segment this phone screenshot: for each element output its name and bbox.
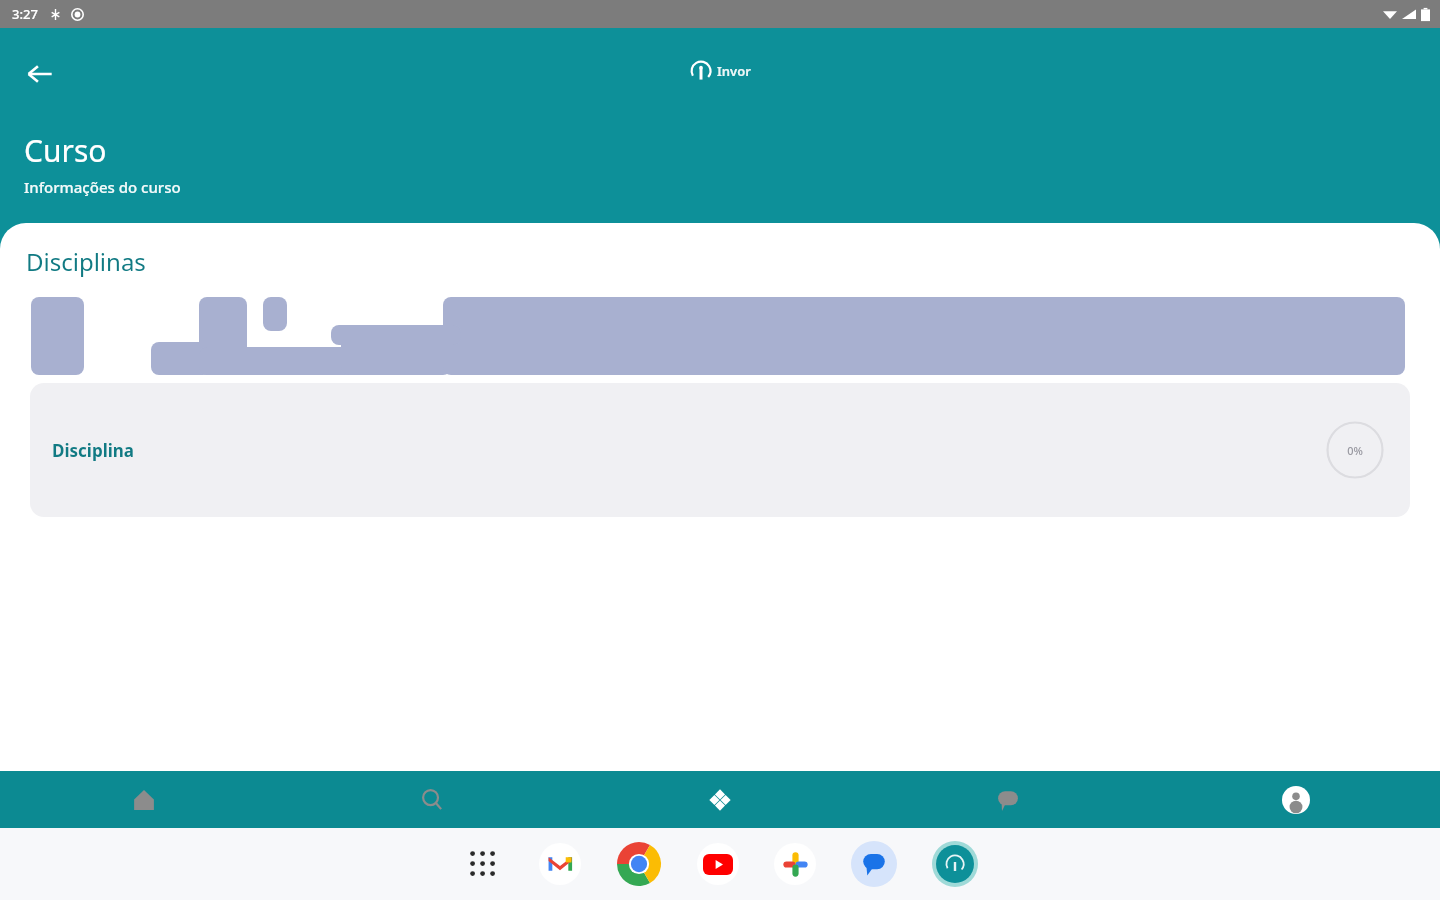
button[interactable]: Messages	[850, 840, 898, 888]
button[interactable]: Gmail	[538, 842, 582, 886]
staticText: Informações do curso	[24, 177, 181, 197]
staticText: 0%	[1347, 443, 1363, 458]
button[interactable]: YouTube	[696, 842, 740, 886]
button[interactable]: Search	[288, 771, 576, 828]
button[interactable]: Profile	[1152, 771, 1440, 828]
button[interactable]: Messages	[864, 771, 1152, 828]
button[interactable]: Chrome	[615, 840, 663, 888]
button[interactable]: Disciplina	[30, 383, 1410, 517]
button[interactable]: Invor	[931, 840, 979, 888]
staticText: Invor	[717, 62, 751, 80]
button[interactable]: Apps	[576, 771, 864, 828]
button[interactable]: Invor	[690, 60, 751, 82]
button[interactable]: Back	[14, 48, 66, 100]
staticText: Disciplina	[52, 439, 135, 462]
staticText: 3:27	[12, 5, 38, 23]
staticText: Curso	[24, 130, 107, 171]
button[interactable]: All apps	[461, 842, 505, 886]
staticText: Disciplinas	[26, 245, 146, 278]
button[interactable]: Photos	[773, 842, 817, 886]
button[interactable]: Home	[0, 771, 288, 828]
